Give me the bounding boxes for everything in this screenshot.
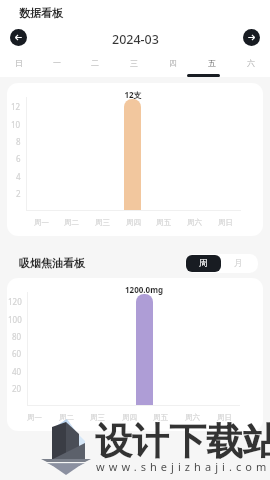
staticText: 8 [16, 136, 21, 147]
staticText: 一 [53, 58, 61, 68]
staticText: 周一 [34, 218, 49, 227]
staticText: 周五 [153, 413, 168, 422]
staticText: 周 [199, 258, 208, 269]
staticText: 周日 [218, 218, 233, 227]
staticText: 周一 [27, 413, 42, 422]
button[interactable]: 六 [231, 58, 270, 78]
staticText: 2024-03 [112, 31, 159, 48]
staticText: 周二 [64, 218, 79, 227]
staticText: 周四 [122, 413, 137, 422]
staticText: 40 [12, 366, 22, 377]
staticText: 2 [16, 188, 21, 199]
staticText: 四 [169, 58, 177, 68]
button[interactable]: 一 [38, 58, 76, 78]
staticText: 60 [12, 348, 22, 359]
staticText: www.shejizhaji.com [96, 459, 270, 474]
staticText: 1200.0mg [125, 284, 163, 295]
staticText: 20 [12, 383, 22, 394]
staticText: 12 [11, 101, 21, 112]
staticText: 周三 [95, 218, 110, 227]
staticText: 120 [8, 296, 22, 307]
staticText: 周二 [59, 413, 74, 422]
button[interactable]: 日 [0, 58, 38, 78]
button[interactable]: 月 [221, 255, 256, 272]
staticText: 周六 [185, 413, 200, 422]
button[interactable]: Next month [243, 29, 260, 46]
staticText: 六 [247, 58, 255, 68]
staticText: 设计下载站 [95, 418, 270, 465]
staticText: 三 [130, 58, 138, 68]
staticText: 周日 [217, 413, 232, 422]
button[interactable]: 四 [153, 58, 192, 78]
staticText: 周六 [187, 218, 202, 227]
button[interactable]: 三 [114, 58, 153, 78]
staticText: 二 [91, 58, 99, 68]
button[interactable]: 周 [186, 255, 221, 272]
staticText: 4 [16, 171, 21, 182]
staticText: 日 [15, 58, 23, 68]
staticText: 五 [208, 58, 216, 68]
staticText: 周五 [156, 218, 171, 227]
staticText: 周三 [90, 413, 105, 422]
staticText: 100 [8, 314, 22, 325]
button[interactable]: Previous month [10, 29, 27, 46]
button[interactable]: 五 [192, 58, 231, 78]
staticText: 80 [12, 331, 22, 342]
staticText: 吸烟焦油看板 [19, 256, 85, 270]
staticText: 6 [16, 153, 21, 164]
staticText: 数据看板 [19, 6, 63, 20]
staticText: 12支 [124, 89, 142, 100]
staticText: 周四 [126, 218, 141, 227]
button[interactable]: 二 [76, 58, 114, 78]
staticText: 10 [11, 119, 21, 130]
staticText: 月 [234, 258, 243, 269]
